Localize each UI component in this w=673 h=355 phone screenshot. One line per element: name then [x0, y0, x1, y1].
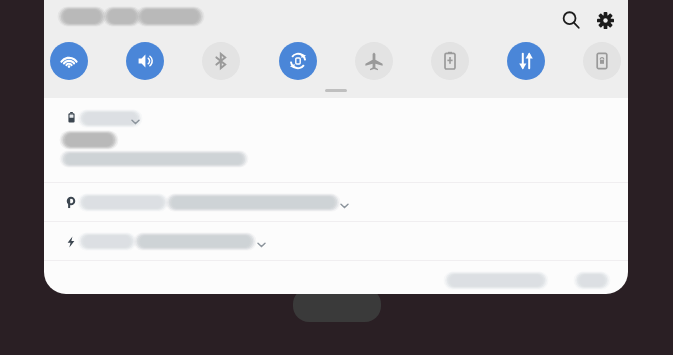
button[interactable]: Bluetooth: [202, 42, 240, 80]
button[interactable]: Airplane mode: [355, 42, 393, 80]
button[interactable]: Screen lock: [583, 42, 621, 80]
button[interactable]: Settings: [590, 5, 620, 35]
button[interactable]: Search: [556, 5, 586, 35]
button[interactable]: [44, 98, 628, 182]
button[interactable]: Battery saver: [431, 42, 469, 80]
button[interactable]: [44, 183, 628, 221]
button[interactable]: Auto rotate: [279, 42, 317, 80]
button[interactable]: Wi-Fi: [50, 42, 88, 80]
button[interactable]: Mobile data: [507, 42, 545, 80]
button[interactable]: [572, 269, 612, 291]
button[interactable]: [44, 222, 628, 260]
button[interactable]: [448, 269, 544, 291]
button[interactable]: Sound: [126, 42, 164, 80]
